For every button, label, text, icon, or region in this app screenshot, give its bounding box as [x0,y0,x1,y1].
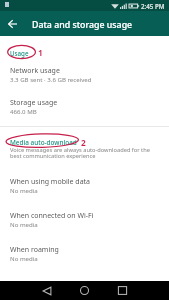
staticText: When connected on Wi-Fi [10,211,94,221]
staticText: Media auto-download [10,138,77,147]
button[interactable]: Recent apps [110,281,135,300]
button[interactable]: Network usage [0,66,169,96]
staticText: 1 [38,47,43,58]
button[interactable]: Usage [0,48,169,58]
button[interactable]: Home [72,281,97,300]
button[interactable]: Storage usage [0,98,169,128]
staticText: Data and storage usage [32,19,133,31]
staticText: 466.0 MB [10,107,37,115]
staticText: When using mobile data [10,177,91,187]
staticText: No media [10,220,38,228]
staticText: 3.3 GB sent · 3.6 GB received [10,75,92,83]
staticText: Network usage [10,66,60,76]
button[interactable]: When connected on Wi-Fi [0,211,169,241]
staticText: Storage usage [10,98,58,108]
staticText: 2 [81,137,86,148]
staticText: No media [10,186,38,194]
button[interactable]: Back [2,11,23,36]
staticText: No media [10,254,38,262]
staticText: Usage [10,49,29,57]
button[interactable]: When using mobile data [0,177,169,207]
staticText: 2:45 PM [141,2,165,10]
staticText: Voice messages are always auto-downloade… [10,146,150,160]
staticText: When roaming [10,245,59,255]
button[interactable]: Media auto-download [0,137,169,147]
button[interactable]: When roaming [0,245,169,275]
button[interactable]: Back [34,281,59,300]
